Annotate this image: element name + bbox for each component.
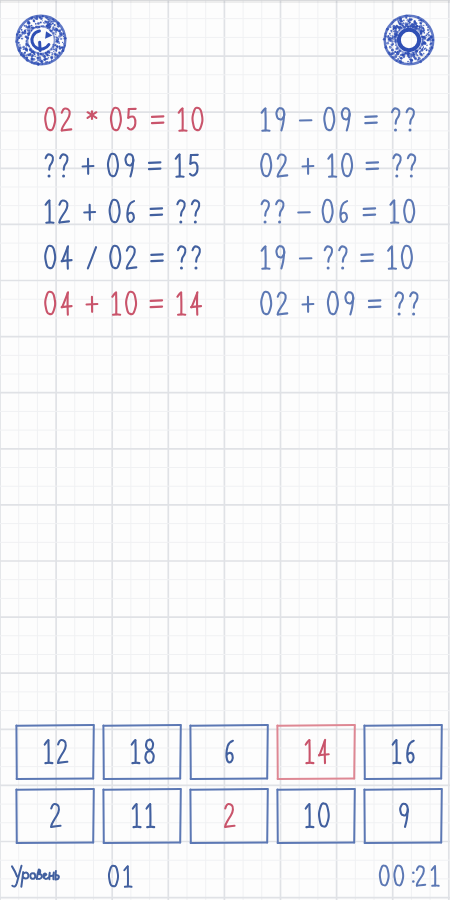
button[interactable]: [189, 788, 269, 844]
button[interactable]: [15, 788, 95, 844]
button[interactable]: Restart level: [16, 15, 66, 65]
button[interactable]: [276, 724, 356, 780]
button[interactable]: [363, 788, 443, 844]
button[interactable]: [276, 788, 356, 844]
button[interactable]: Pause game: [384, 15, 434, 65]
button[interactable]: [363, 724, 443, 780]
button[interactable]: [102, 724, 182, 780]
button[interactable]: [15, 724, 95, 780]
button[interactable]: [189, 724, 269, 780]
button[interactable]: [102, 788, 182, 844]
button[interactable]: [6, 860, 156, 894]
